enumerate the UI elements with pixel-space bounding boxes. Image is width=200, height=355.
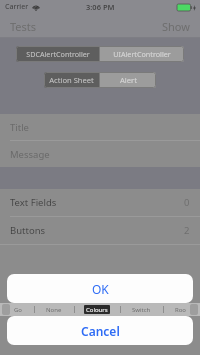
staticText: Colours — [86, 306, 108, 314]
staticText: Message — [10, 148, 50, 161]
staticText: OK — [92, 281, 109, 297]
staticText: UIAlertController — [113, 49, 171, 59]
button[interactable]: Go — [12, 305, 24, 314]
button[interactable]: Roo — [173, 305, 188, 314]
button[interactable]: Alert — [100, 72, 156, 88]
staticText: Switch — [132, 306, 151, 314]
staticText: Action Sheet — [49, 75, 94, 85]
staticText: Alert — [120, 75, 137, 85]
button[interactable]: Switch — [130, 305, 153, 314]
button[interactable]: Tests — [0, 16, 47, 37]
button[interactable]: Cancel — [7, 316, 193, 345]
staticText: 2 — [184, 224, 190, 237]
button[interactable]: SDCAlertController — [16, 46, 99, 62]
staticText: Text Fields — [10, 196, 57, 209]
staticText: None — [46, 306, 62, 314]
button[interactable]: OK — [7, 274, 193, 303]
staticText: Roo — [175, 306, 186, 314]
staticText: 0 — [184, 196, 190, 209]
staticText: Cancel — [81, 323, 120, 339]
staticText: Carrier — [5, 2, 29, 12]
button[interactable]: Show — [152, 16, 200, 37]
button[interactable]: Text Fields — [0, 189, 200, 216]
button[interactable]: Action Sheet — [44, 72, 99, 88]
button[interactable]: UIAlertController — [100, 46, 184, 62]
staticText: 3:06 PM — [86, 2, 115, 12]
staticText: Buttons — [10, 224, 46, 237]
staticText: Show — [162, 19, 190, 34]
button[interactable]: Buttons — [0, 217, 200, 244]
staticText: Go — [14, 306, 22, 314]
button[interactable]: Colours — [84, 305, 110, 314]
button[interactable]: Message — [0, 141, 200, 167]
staticText: Tests — [10, 19, 37, 34]
staticText: SDCAlertController — [26, 49, 90, 59]
staticText: Title — [10, 121, 29, 134]
button[interactable]: None — [44, 305, 64, 314]
